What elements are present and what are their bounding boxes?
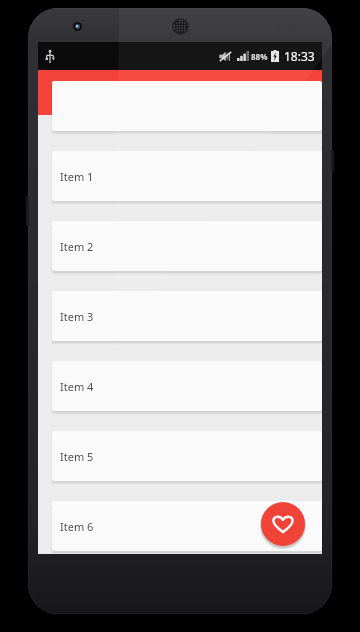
staticText: Item 5 [60, 449, 94, 464]
button[interactable]: Item 5 [52, 431, 322, 481]
button[interactable]: Item 3 [52, 291, 322, 341]
button[interactable]: Favorite [261, 502, 305, 546]
staticText: 18:33 [284, 48, 315, 64]
staticText: Item 2 [60, 239, 94, 254]
button[interactable]: Item 2 [52, 221, 322, 271]
button[interactable]: Item 4 [52, 361, 322, 411]
button[interactable]: HideOnScrollExample [38, 70, 322, 115]
staticText: Item 4 [60, 379, 94, 394]
staticText: Item 1 [60, 169, 94, 184]
staticText: 88% [251, 51, 268, 62]
button[interactable]: Item 1 [52, 151, 322, 201]
button[interactable]: Item 6 [52, 501, 322, 551]
staticText: Item 3 [60, 309, 94, 324]
staticText: Item 6 [60, 519, 94, 534]
